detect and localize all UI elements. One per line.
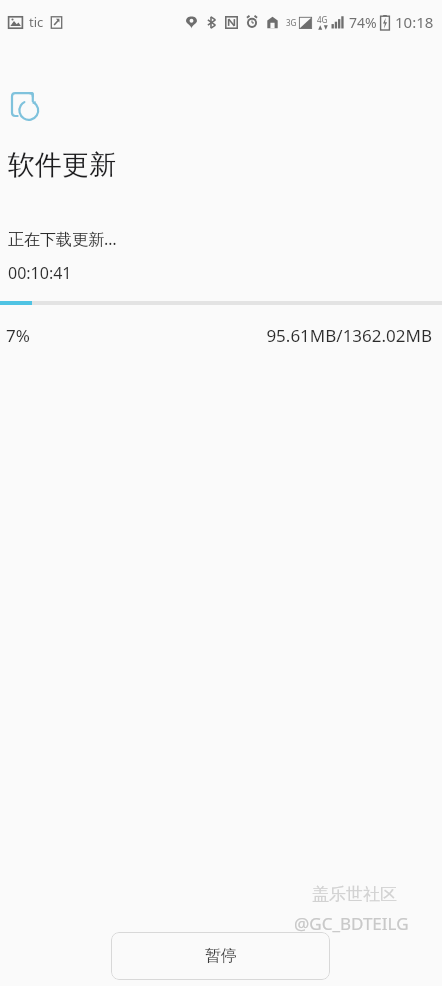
staticText: 正在下载更新… [8,228,117,250]
staticText: 4G [317,14,328,25]
other: Software update [8,88,48,128]
staticText: 暂停 [205,946,237,966]
staticText: 盖乐世社区 [312,884,397,905]
staticText: 00:10:41 [8,262,72,284]
staticText: 软件更新 [8,148,116,182]
staticText: 3G [286,17,297,28]
staticText: 95.61MB/1362.02MB [266,324,432,347]
staticText: tic [29,13,44,31]
staticText: 10:18 [395,12,434,32]
button[interactable]: 暂停 [111,932,330,980]
staticText: 7% [6,324,30,347]
staticText: @GC_BDTEILG [294,912,409,935]
staticText: 74% [349,13,377,32]
